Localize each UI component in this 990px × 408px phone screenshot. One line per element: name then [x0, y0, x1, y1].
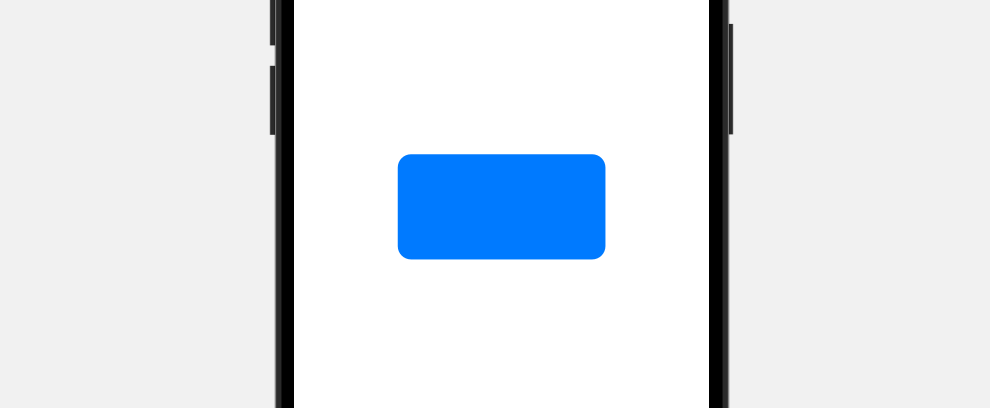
button[interactable]: Primary action	[398, 154, 605, 259]
